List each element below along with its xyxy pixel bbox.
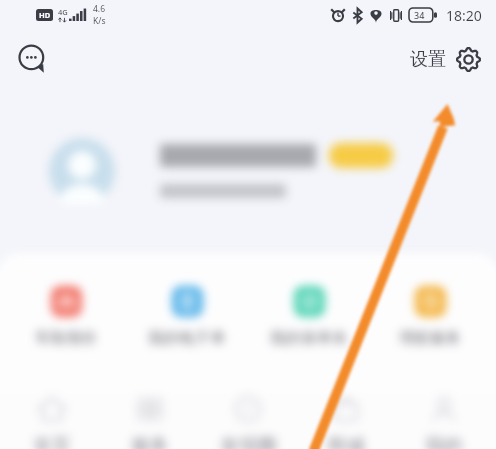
staticText: 18:20 [446, 6, 482, 25]
button[interactable]: 我的保单夹 [254, 286, 364, 348]
staticText: 34 [414, 9, 425, 21]
button[interactable] [0, 88, 496, 253]
staticText: 设置 [410, 48, 446, 71]
button[interactable]: 首页 [6, 394, 98, 449]
staticText: 服务 [131, 434, 169, 449]
staticText: 发现圈 [220, 434, 277, 449]
button[interactable]: 设置 [410, 46, 482, 73]
button[interactable]: 我的电子单 [132, 286, 242, 348]
button[interactable]: 理赔服务 [375, 286, 485, 348]
button[interactable]: 发现圈 [202, 394, 294, 449]
button[interactable]: Messages [12, 39, 52, 79]
staticText: 理赔服务 [399, 328, 461, 348]
staticText: HD [39, 10, 51, 20]
staticText: 车险报价 [35, 328, 97, 348]
button[interactable]: 服务 [104, 394, 196, 449]
staticText: 首页 [33, 434, 71, 449]
staticText: 商城 [327, 434, 365, 449]
staticText: 4G [58, 7, 68, 17]
button[interactable]: 商城 [300, 394, 392, 449]
staticText: 我的 [425, 434, 463, 449]
staticText: 我的电子单 [148, 328, 226, 348]
staticText: K/s [93, 15, 106, 27]
staticText: 我的保单夹 [270, 328, 348, 348]
button[interactable]: 车险报价 [11, 286, 121, 348]
staticText: 4.6 [93, 3, 106, 15]
button[interactable]: 我的 [398, 394, 490, 449]
